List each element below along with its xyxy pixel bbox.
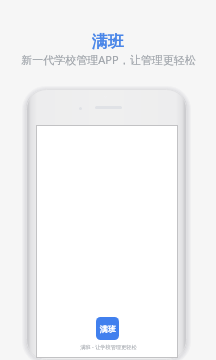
staticText: 满班 <box>92 32 124 52</box>
button[interactable]: 满班 app icon <box>96 317 119 340</box>
staticText: 满班 - 让学校管理更轻松 <box>80 343 137 350</box>
staticText: 满班 <box>100 324 116 334</box>
staticText: 新一代学校管理APP，让管理更轻松 <box>21 52 196 67</box>
